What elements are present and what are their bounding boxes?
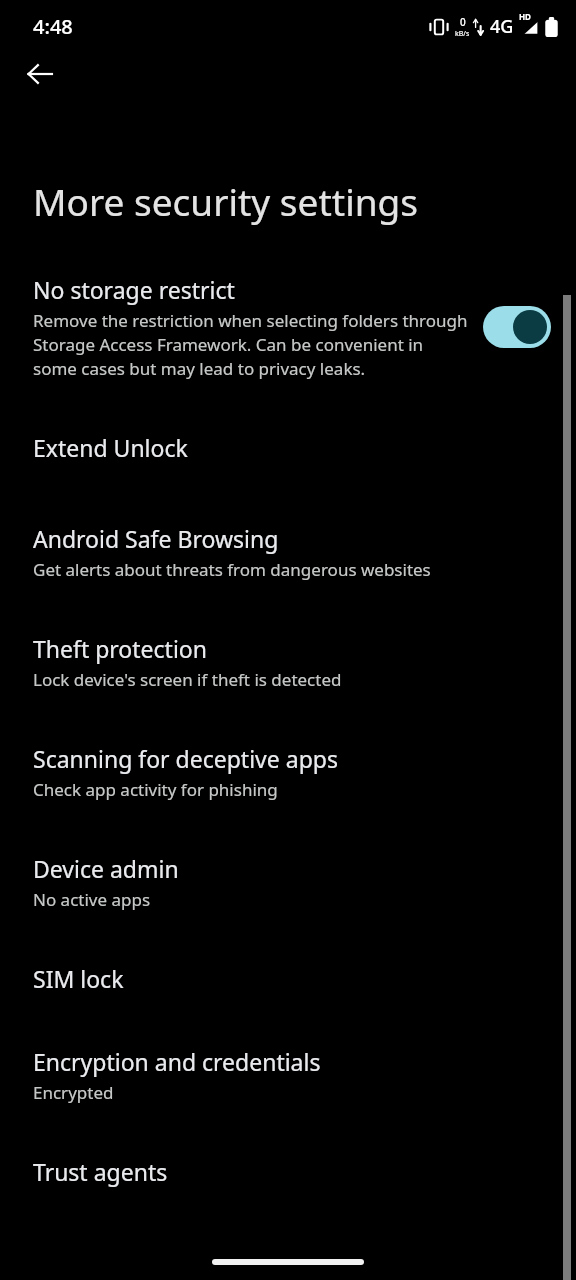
button[interactable]: Extend Unlock xyxy=(0,432,576,463)
staticText: Remove the restriction when selecting fo… xyxy=(33,309,471,380)
staticText: Scanning for deceptive apps xyxy=(33,743,338,774)
staticText: 0 xyxy=(460,15,466,29)
button[interactable]: No storage restrict xyxy=(0,274,576,380)
button[interactable]: SIM lock xyxy=(0,963,576,994)
button[interactable]: Scanning for deceptive apps xyxy=(0,743,576,801)
staticText: 4:48 xyxy=(33,13,73,40)
button[interactable]: Trust agents xyxy=(0,1156,576,1187)
staticText: Get alerts about threats from dangerous … xyxy=(33,558,431,581)
staticText: 4G xyxy=(490,14,514,39)
staticText: Theft protection xyxy=(33,633,207,664)
button[interactable]: Theft protection xyxy=(0,633,576,691)
staticText: kB/s xyxy=(455,29,470,39)
staticText: Device admin xyxy=(33,853,179,884)
staticText: Trust agents xyxy=(33,1156,168,1187)
staticText: More security settings xyxy=(33,176,419,226)
button[interactable]: No storage restrict toggle xyxy=(483,306,551,348)
staticText: Encryption and credentials xyxy=(33,1046,321,1077)
staticText: Check app activity for phishing xyxy=(33,778,278,801)
staticText: Encrypted xyxy=(33,1081,114,1104)
button[interactable]: Android Safe Browsing xyxy=(0,523,576,581)
staticText: Lock device's screen if theft is detecte… xyxy=(33,668,342,691)
staticText: No storage restrict xyxy=(33,274,235,305)
staticText: Extend Unlock xyxy=(33,432,188,463)
staticText: Android Safe Browsing xyxy=(33,523,279,554)
staticText: No active apps xyxy=(33,888,151,911)
staticText: HD xyxy=(519,11,531,22)
staticText: SIM lock xyxy=(33,963,124,994)
button[interactable]: Back xyxy=(18,52,62,96)
button[interactable]: Device admin xyxy=(0,853,576,911)
button[interactable]: Encryption and credentials xyxy=(0,1046,576,1104)
